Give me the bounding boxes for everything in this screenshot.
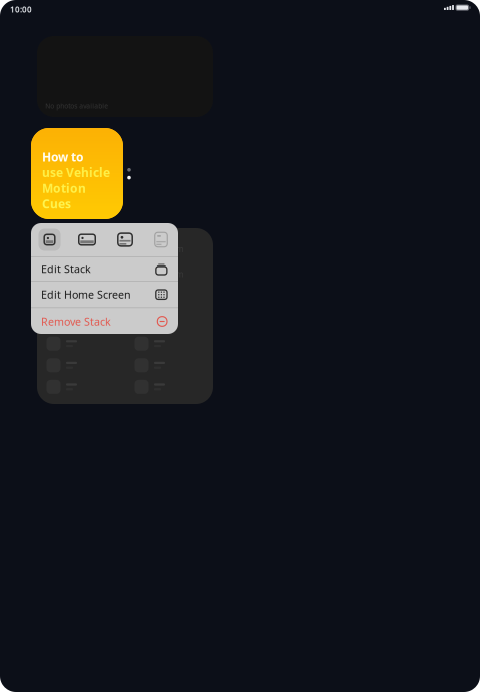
staticText: 0 [166,295,171,305]
staticText: Cues [42,196,71,211]
button[interactable]: Edit Home Screen [31,282,178,307]
staticText: Motion [42,180,86,196]
button[interactable]: Edit Stack [31,257,178,281]
button[interactable]: Medium widget size [68,223,106,256]
button[interactable]: Extra large widget size [144,223,178,256]
staticText: Edit Home Screen [41,288,131,302]
button[interactable]: Tips: How to use Vehicle Motion Cues [31,128,123,219]
button[interactable]: Remove Stack [31,308,178,335]
staticText: Edit Stack [41,262,91,276]
button[interactable]: Small widget size [31,223,68,256]
staticText: How to [42,149,84,165]
button[interactable]: Large widget size [106,223,144,256]
staticText: 30m [166,269,183,280]
staticText: No photos available [45,101,108,110]
staticText: Remove Stack [41,314,111,329]
staticText: 60m [166,244,183,254]
staticText: 10:00 [10,4,32,15]
staticText: use Vehicle [42,164,110,180]
